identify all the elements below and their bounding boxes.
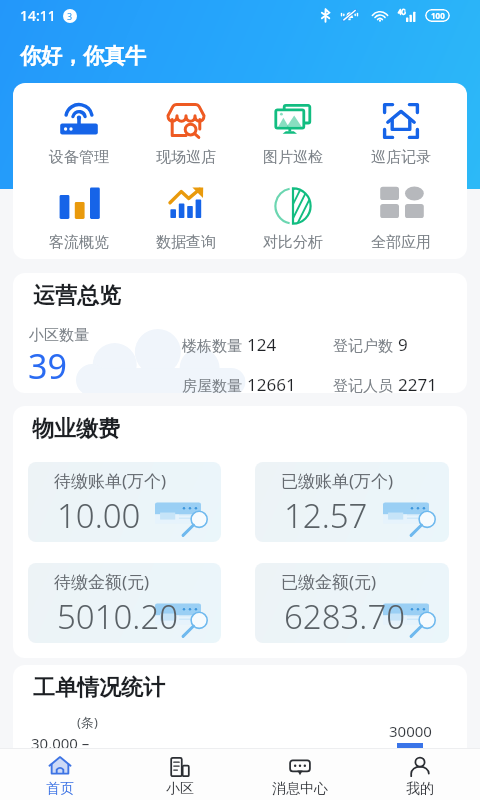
button[interactable]: 已缴金额(元): [255, 563, 449, 643]
button[interactable]: 首页: [0, 749, 120, 800]
staticText: 9: [398, 333, 408, 356]
staticText: 2271: [398, 373, 437, 393]
staticText: 10.00: [57, 493, 141, 538]
button[interactable]: 设备管理: [25, 101, 132, 167]
button[interactable]: 对比分析: [239, 186, 347, 252]
staticText: 客流概览: [49, 233, 109, 252]
staticText: 图片巡检: [263, 148, 323, 167]
button[interactable]: 巡店记录: [347, 101, 455, 167]
staticText: 楼栋数量: [182, 337, 242, 356]
staticText: 30000: [389, 721, 432, 741]
staticText: 待缴账单(万个): [54, 469, 167, 492]
staticText: 对比分析: [263, 233, 323, 252]
staticText: 现场巡店: [156, 148, 216, 167]
staticText: 已缴金额(元): [281, 570, 377, 593]
staticText: 你好，你真牛: [20, 43, 146, 69]
button[interactable]: 消息中心: [240, 749, 360, 800]
staticText: 3: [67, 10, 73, 22]
staticText: 30,000 –: [31, 733, 90, 753]
button[interactable]: 全部应用: [347, 186, 455, 252]
staticText: 小区数量: [29, 326, 89, 345]
staticText: 全部应用: [371, 233, 431, 252]
staticText: 39: [28, 343, 67, 389]
staticText: 房屋数量: [182, 377, 242, 393]
staticText: 14:11: [20, 6, 56, 25]
button[interactable]: 我的: [360, 749, 480, 800]
staticText: 待缴金额(元): [54, 570, 150, 593]
staticText: 消息中心: [272, 780, 328, 798]
button[interactable]: 小区: [120, 749, 240, 800]
staticText: 124: [247, 333, 277, 356]
staticText: 巡店记录: [371, 148, 431, 167]
staticText: 数据查询: [156, 233, 216, 252]
button[interactable]: 客流概览: [25, 186, 132, 252]
staticText: 运营总览: [33, 282, 121, 310]
staticText: 我的: [406, 780, 434, 798]
button[interactable]: 待缴账单(万个): [28, 462, 221, 542]
button[interactable]: 数据查询: [132, 186, 239, 252]
staticText: 6283.70: [284, 594, 406, 639]
staticText: 设备管理: [49, 148, 109, 167]
button[interactable]: 现场巡店: [132, 101, 239, 167]
staticText: 物业缴费: [32, 415, 120, 443]
staticText: 工单情况统计: [33, 674, 165, 702]
staticText: 100: [431, 10, 445, 21]
staticText: 首页: [46, 780, 74, 798]
staticText: 12661: [247, 373, 296, 393]
staticText: 登记户数: [333, 337, 393, 356]
staticText: 12.57: [284, 493, 368, 538]
button[interactable]: 已缴账单(万个): [255, 462, 449, 542]
staticText: 登记人员: [333, 377, 393, 393]
button[interactable]: 待缴金额(元): [28, 563, 221, 643]
staticText: 5010.20: [57, 594, 179, 639]
staticText: 已缴账单(万个): [281, 469, 394, 492]
staticText: 小区: [166, 780, 194, 798]
button[interactable]: 图片巡检: [239, 101, 347, 167]
staticText: (条): [77, 713, 98, 731]
